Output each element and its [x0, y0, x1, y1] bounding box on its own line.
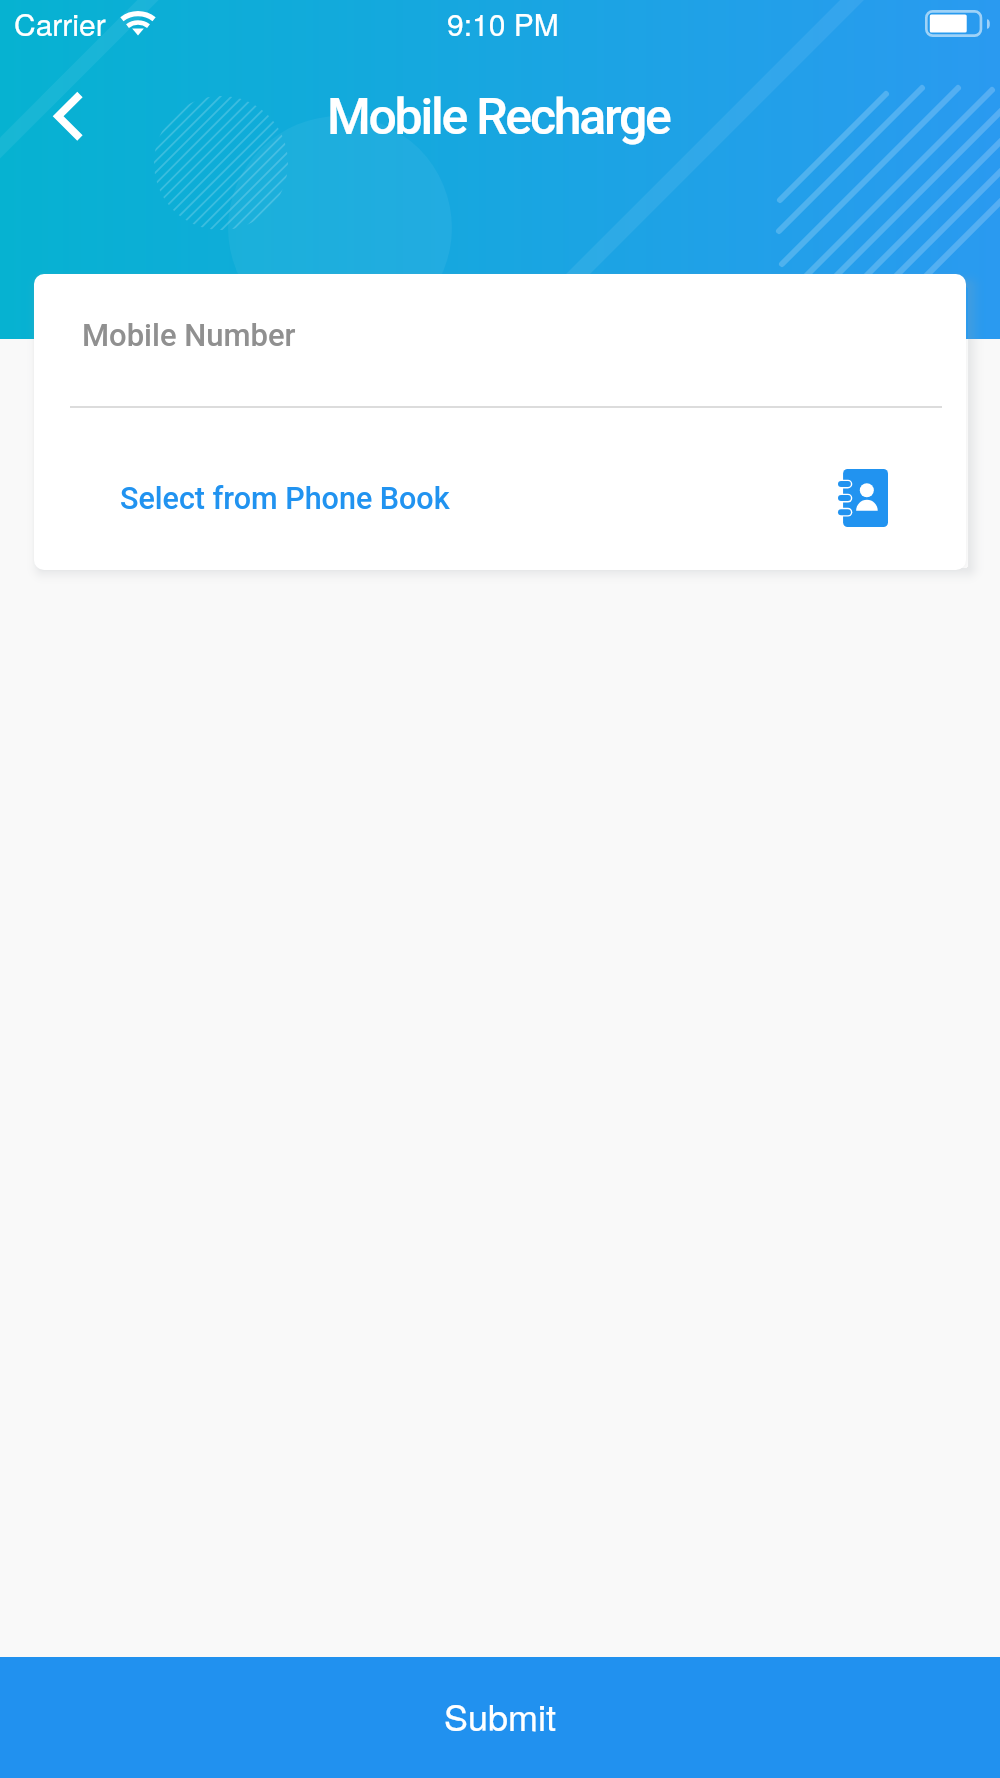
staticText: Select from Phone Book — [120, 481, 450, 517]
staticText: Mobile Recharge — [327, 88, 670, 147]
button[interactable]: Select from Phone Book — [34, 437, 966, 561]
staticText: 9:10 PM — [447, 2, 559, 45]
staticText: Mobile Number — [82, 317, 296, 353]
staticText: Carrier — [14, 2, 106, 45]
button[interactable]: Submit — [0, 1657, 1000, 1778]
button[interactable]: Back — [12, 68, 112, 164]
staticText: Submit — [444, 1690, 557, 1742]
